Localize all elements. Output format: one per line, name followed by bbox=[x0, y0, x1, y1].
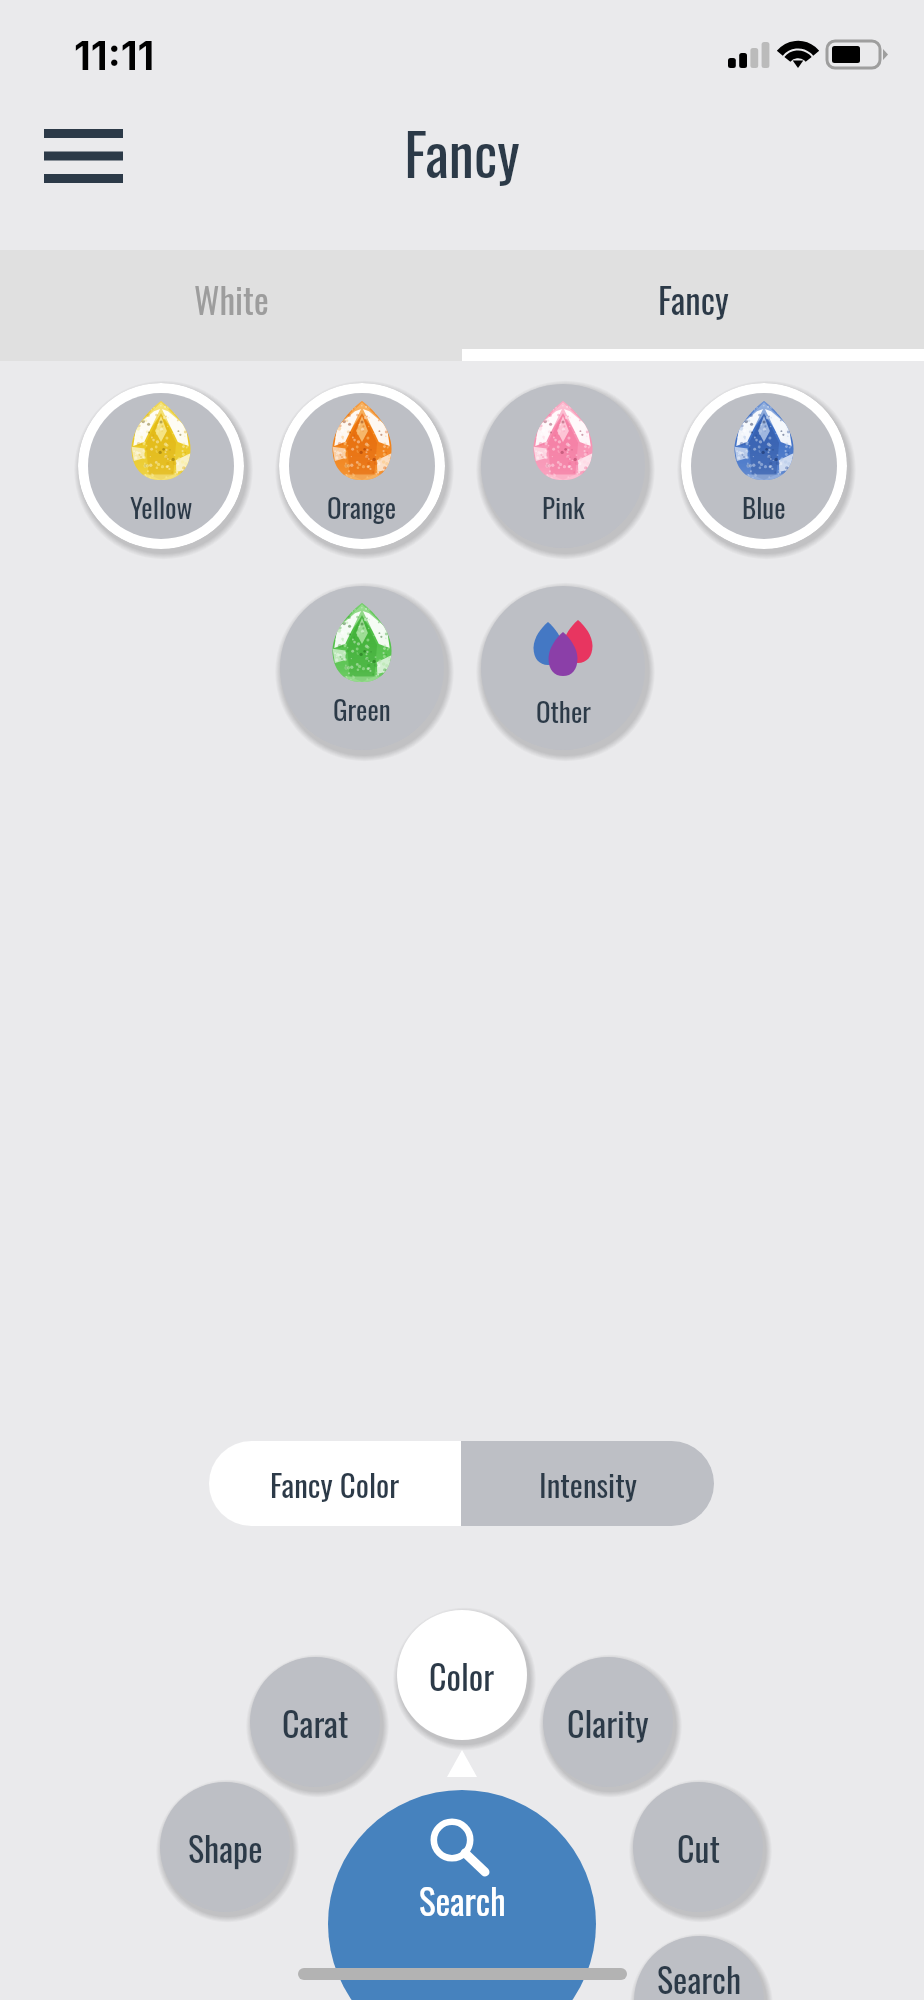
staticText: Fancy Color bbox=[270, 1461, 400, 1507]
staticText: Orange bbox=[327, 487, 397, 527]
button[interactable]: Search bbox=[622, 1924, 776, 2000]
button[interactable]: Orange bbox=[279, 383, 445, 549]
button[interactable]: Yellow bbox=[78, 383, 244, 549]
button[interactable]: Cut bbox=[621, 1770, 775, 1924]
staticText: Fancy bbox=[0, 110, 924, 194]
button[interactable]: Pink bbox=[480, 383, 646, 549]
staticText: Fancy bbox=[658, 273, 729, 325]
staticText: Search bbox=[419, 1874, 506, 1926]
staticText: Other bbox=[536, 691, 591, 731]
staticText: Blue bbox=[742, 487, 786, 527]
button[interactable]: White bbox=[0, 250, 462, 361]
staticText: Shape bbox=[188, 1822, 263, 1872]
staticText: Carat bbox=[282, 1697, 349, 1747]
button[interactable]: Intensity bbox=[461, 1441, 714, 1526]
staticText: White bbox=[194, 273, 269, 325]
button[interactable]: Green bbox=[279, 585, 445, 751]
staticText: Clarity bbox=[567, 1697, 649, 1747]
button[interactable]: Clarity bbox=[531, 1645, 685, 1799]
staticText: Color bbox=[429, 1650, 495, 1700]
staticText: 11:11 bbox=[74, 32, 155, 79]
staticText: Yellow bbox=[130, 487, 193, 527]
button[interactable]: Fancy Color bbox=[209, 1441, 461, 1526]
button[interactable]: Blue bbox=[681, 383, 847, 549]
button[interactable]: Color bbox=[385, 1598, 539, 1752]
button[interactable]: Open navigation menu bbox=[30, 110, 140, 190]
button[interactable]: Other bbox=[468, 573, 658, 763]
button[interactable]: Fancy bbox=[462, 250, 924, 361]
staticText: Pink bbox=[542, 487, 585, 527]
button[interactable]: Shape bbox=[148, 1770, 302, 1924]
staticText: Cut bbox=[677, 1822, 720, 1872]
button[interactable]: Carat bbox=[238, 1645, 392, 1799]
button[interactable]: Search bbox=[328, 1790, 596, 2000]
staticText: Green bbox=[333, 689, 391, 729]
staticText: Search bbox=[657, 1953, 742, 2000]
staticText: Intensity bbox=[539, 1461, 637, 1507]
